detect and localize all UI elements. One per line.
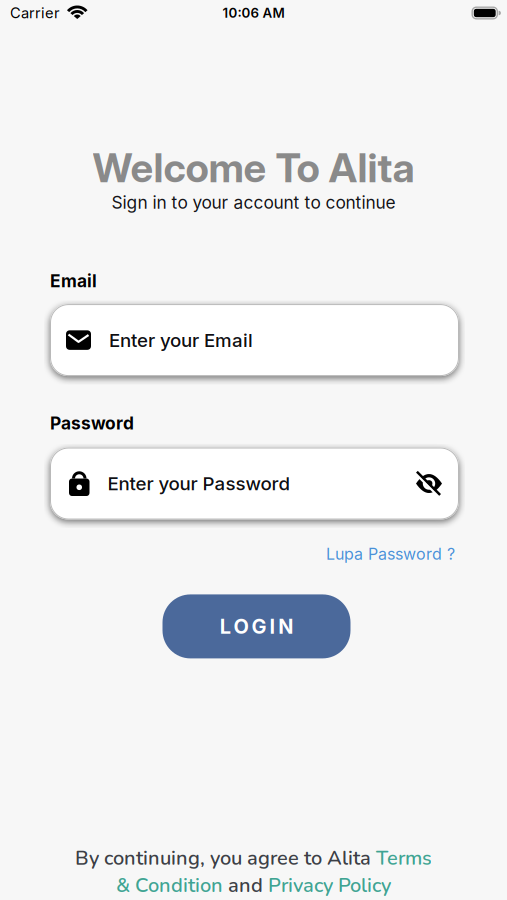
staticText: L xyxy=(220,615,231,638)
staticText: By continuing, you agree to Alita xyxy=(75,844,376,872)
staticText: Terms xyxy=(376,844,432,872)
staticText: and xyxy=(223,872,268,899)
button[interactable]: Enter your Email xyxy=(50,304,459,376)
staticText: O xyxy=(234,615,249,638)
staticText: Lupa Password ? xyxy=(326,544,455,563)
staticText: Sign in to your account to continue xyxy=(111,192,395,213)
button[interactable]: Privacy Policy xyxy=(268,872,391,899)
staticText: & Condition xyxy=(116,872,223,899)
staticText: N xyxy=(278,615,293,638)
button[interactable]: L xyxy=(162,594,350,658)
staticText: Password xyxy=(50,413,134,433)
button[interactable]: Terms xyxy=(376,844,432,872)
button[interactable]: & Condition xyxy=(116,872,223,899)
staticText: Carrier xyxy=(10,4,60,22)
staticText: Privacy Policy xyxy=(268,872,391,899)
staticText: Email xyxy=(50,271,97,291)
staticText: I xyxy=(269,615,275,638)
staticText: G xyxy=(251,615,266,638)
staticText: Enter your Password xyxy=(107,472,290,494)
staticText: Enter your Email xyxy=(109,329,253,351)
staticText: 10:06 AM xyxy=(222,5,284,21)
button[interactable] xyxy=(416,474,442,493)
button[interactable]: Lupa Password ? xyxy=(326,544,459,563)
staticText: Welcome To Alita xyxy=(92,144,414,191)
button[interactable]: Enter your Password xyxy=(50,447,459,519)
